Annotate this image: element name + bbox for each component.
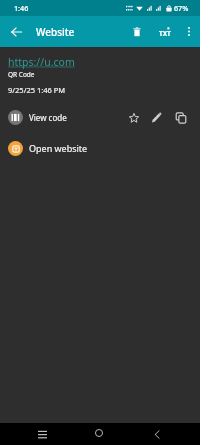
button[interactable]: Copy: [171, 108, 190, 127]
staticText: 67%: [174, 3, 189, 13]
button[interactable]: Export as TXT: [152, 19, 177, 44]
staticText: QR Code: [8, 70, 35, 79]
button[interactable]: Delete: [124, 19, 149, 44]
button[interactable]: Back: [3, 19, 29, 45]
button[interactable]: More options: [178, 21, 199, 42]
button[interactable]: Recent apps: [31, 423, 53, 445]
button[interactable]: Favorite: [124, 108, 143, 127]
button[interactable]: View code: [0, 105, 200, 129]
staticText: 9/25/25 1:46 PM: [8, 85, 66, 95]
staticText: TXT: [159, 29, 171, 38]
staticText: Open website: [29, 142, 88, 154]
button[interactable]: Home: [88, 422, 110, 444]
staticText: Website: [36, 25, 75, 39]
staticText: View code: [29, 112, 67, 123]
button[interactable]: Edit: [147, 108, 166, 127]
button[interactable]: Open website: [0, 136, 200, 160]
button[interactable]: Back: [146, 423, 168, 445]
staticText: 1:46: [14, 3, 29, 13]
staticText: https://u.com: [8, 55, 75, 69]
